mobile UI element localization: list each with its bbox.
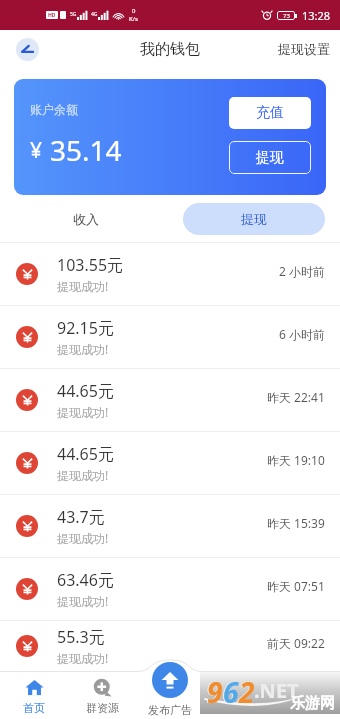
button[interactable]: 44.65元 xyxy=(0,369,340,431)
staticText: 103.55元 xyxy=(57,254,124,276)
button[interactable]: 提现设置 xyxy=(278,41,330,57)
button[interactable]: 44.65元 xyxy=(0,432,340,494)
staticText: 乐游网 xyxy=(290,694,335,713)
staticText: 提现成功! xyxy=(57,530,109,546)
button[interactable]: 消息 xyxy=(204,678,272,719)
staticText: 昨天 22:41 xyxy=(267,389,325,405)
staticText: 9 xyxy=(207,673,223,711)
staticText: 提现成功! xyxy=(57,593,109,609)
staticText: 充值 xyxy=(256,104,284,122)
button[interactable]: 首页 xyxy=(0,678,68,719)
staticText: .NET xyxy=(254,677,299,704)
staticText: 提现成功! xyxy=(57,341,109,357)
staticText: 我的 xyxy=(295,701,317,715)
staticText: 提现成功! xyxy=(57,650,109,666)
staticText: 提现 xyxy=(256,149,284,167)
button[interactable]: 收入 xyxy=(15,203,157,235)
staticText: 55.3元 xyxy=(57,626,105,648)
staticText: 13:28 xyxy=(302,8,331,23)
button[interactable]: 92.15元 xyxy=(0,306,340,368)
staticText: 提现成功! xyxy=(57,404,109,420)
staticText: 首页 xyxy=(23,701,45,715)
staticText: 2 xyxy=(238,672,254,711)
staticText: 2 xyxy=(239,673,255,711)
staticText: 6 xyxy=(222,672,238,711)
button[interactable]: 充值 xyxy=(229,97,311,129)
staticText: 我的钱包 xyxy=(140,40,200,59)
staticText: 4G xyxy=(91,11,98,18)
staticText: 9 xyxy=(206,672,222,711)
staticText: 昨天 07:51 xyxy=(267,578,325,594)
staticText: ¥ xyxy=(30,136,43,165)
button[interactable]: 43.7元 xyxy=(0,495,340,557)
button[interactable]: 55.3元 xyxy=(0,621,340,671)
button[interactable]: 103.55元 xyxy=(0,243,340,305)
staticText: 发布广告 xyxy=(148,703,192,717)
button[interactable]: 发布广告 xyxy=(152,662,188,698)
staticText: 前天 09:22 xyxy=(267,635,325,651)
staticText: 44.65元 xyxy=(57,380,114,402)
staticText: 2 小时前 xyxy=(279,263,325,279)
staticText: 43.7元 xyxy=(57,506,105,528)
button[interactable]: 63.46元 xyxy=(0,558,340,620)
staticText: 6 xyxy=(223,673,239,711)
staticText: HD xyxy=(48,12,56,19)
staticText: 6 小时前 xyxy=(279,326,325,342)
staticText: 73 xyxy=(283,12,290,20)
staticText: 63.46元 xyxy=(57,569,114,591)
button[interactable]: 提现 xyxy=(229,141,311,174)
button[interactable]: 提现 xyxy=(183,203,325,235)
staticText: 昨天 19:10 xyxy=(267,452,325,468)
button[interactable]: 群资源 xyxy=(68,678,136,719)
staticText: 昨天 15:39 xyxy=(267,515,325,531)
staticText: 消息 xyxy=(227,701,249,715)
staticText: 提现成功! xyxy=(57,278,109,294)
staticText: 92.15元 xyxy=(57,317,114,339)
button[interactable]: Back xyxy=(16,38,39,61)
staticText: K/s xyxy=(129,15,138,23)
staticText: 群资源 xyxy=(86,701,119,715)
staticText: 提现成功! xyxy=(57,467,109,483)
staticText: 5G xyxy=(70,11,77,18)
button[interactable]: 我的 xyxy=(272,678,340,719)
staticText: 收入 xyxy=(73,211,99,227)
staticText: 账户余额 xyxy=(30,102,78,117)
staticText: 0 xyxy=(132,7,136,15)
staticText: 44.65元 xyxy=(57,443,114,465)
staticText: 35.14 xyxy=(50,131,122,169)
staticText: 提现 xyxy=(241,211,267,227)
